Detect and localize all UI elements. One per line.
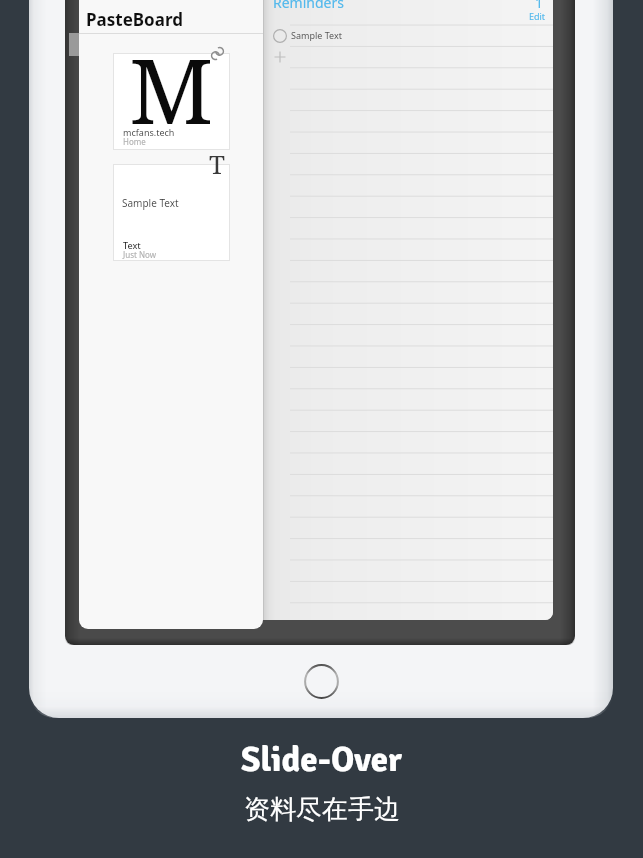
button[interactable]: M xyxy=(113,53,230,150)
button[interactable]: Sample Text xyxy=(113,164,230,261)
staticText: Sample Text xyxy=(122,196,179,210)
staticText: Edit xyxy=(529,10,546,22)
staticText: 资料尽在手边 xyxy=(244,793,400,826)
staticText: PasteBoard xyxy=(86,8,183,31)
staticText: 1 xyxy=(535,0,544,12)
staticText: mcfans.tech xyxy=(123,126,175,138)
staticText: M xyxy=(129,28,214,125)
staticText: Text xyxy=(123,239,141,251)
staticText: Sample Text xyxy=(291,29,342,41)
staticText: Slide-Over xyxy=(241,738,402,781)
other: Link xyxy=(208,44,227,63)
staticText: Reminders xyxy=(273,0,344,12)
button[interactable]: Edit xyxy=(529,10,546,22)
staticText: Just Now xyxy=(123,249,156,260)
button[interactable]: Home xyxy=(304,664,339,699)
staticText: Home xyxy=(123,136,146,147)
staticText: T xyxy=(209,146,225,181)
